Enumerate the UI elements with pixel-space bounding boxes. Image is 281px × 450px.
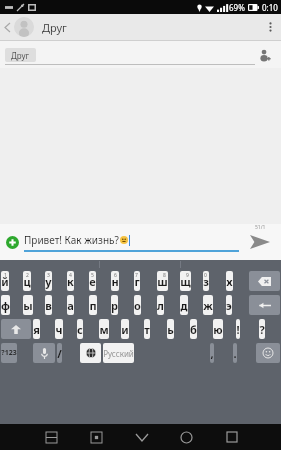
button[interactable]: Back	[0, 14, 14, 40]
staticText: Друг	[11, 50, 30, 61]
button[interactable]: у	[45, 271, 52, 291]
button[interactable]	[33, 343, 55, 363]
button[interactable]: Recents	[209, 424, 254, 450]
button[interactable]: э	[226, 295, 232, 315]
staticText: !	[236, 322, 240, 337]
button[interactable]: м	[99, 319, 109, 339]
staticText: т	[144, 322, 150, 337]
staticText: ш	[157, 274, 168, 289]
staticText: 51/1	[255, 224, 266, 231]
staticText: ж	[203, 298, 213, 313]
staticText: ф	[1, 298, 10, 313]
staticText: в	[45, 298, 52, 313]
button[interactable]: .	[233, 343, 237, 363]
staticText: п	[89, 298, 97, 313]
button[interactable]: я	[33, 319, 40, 339]
staticText: ?	[259, 322, 265, 337]
button[interactable]: Add contact	[254, 44, 276, 66]
button[interactable]: д	[180, 295, 188, 315]
button[interactable]: ш	[157, 271, 168, 291]
button[interactable]: и	[121, 319, 129, 339]
button[interactable]: Русский	[103, 343, 134, 363]
button[interactable]: л	[157, 295, 164, 315]
staticText: д	[180, 298, 188, 313]
button[interactable]: т	[144, 319, 150, 339]
staticText: о	[134, 298, 141, 313]
staticText: Привет! Как жизнь?	[24, 233, 119, 247]
staticText: з	[203, 274, 209, 289]
button[interactable]: Screenshot	[74, 424, 119, 450]
button[interactable]: к	[67, 271, 74, 291]
staticText: х	[226, 274, 233, 289]
staticText: ь	[167, 322, 174, 337]
staticText: я	[33, 322, 40, 337]
button[interactable]: й	[1, 271, 9, 291]
button[interactable]: ?	[259, 319, 265, 339]
staticText: ,	[210, 346, 214, 361]
staticText: ю	[213, 322, 223, 337]
button[interactable]: ,	[210, 343, 214, 363]
button[interactable]: щ	[180, 271, 191, 291]
button[interactable]: р	[111, 295, 118, 315]
staticText: ы	[23, 298, 33, 313]
staticText: щ	[180, 274, 191, 289]
button[interactable]: х	[226, 271, 233, 291]
button[interactable]: More options	[259, 14, 281, 40]
staticText: л	[157, 298, 164, 313]
button[interactable]: г	[134, 271, 140, 291]
staticText: й	[1, 274, 9, 289]
staticText: .	[233, 346, 237, 361]
button[interactable]: Home	[164, 424, 209, 450]
staticText: а	[67, 298, 74, 313]
staticText: 7	[135, 272, 138, 279]
staticText: и	[121, 322, 129, 337]
staticText: Друг	[42, 20, 67, 35]
button[interactable]: Split screen	[28, 424, 74, 450]
button[interactable]	[1, 319, 31, 339]
staticText: б	[190, 322, 197, 337]
button[interactable]: ь	[167, 319, 174, 339]
staticText: е	[89, 274, 96, 289]
button[interactable]: ц	[23, 271, 31, 291]
button[interactable]: а	[67, 295, 74, 315]
button[interactable]: ю	[213, 319, 223, 339]
button[interactable]	[249, 295, 280, 315]
button[interactable]: н	[111, 271, 119, 291]
staticText: 5	[91, 272, 94, 279]
button[interactable]: /	[57, 343, 62, 363]
staticText: ?123	[1, 348, 17, 358]
button[interactable]: е	[89, 271, 96, 291]
button[interactable]: б	[190, 319, 197, 339]
staticText: н	[111, 274, 119, 289]
staticText: 6	[114, 272, 117, 279]
button[interactable]: з	[203, 271, 209, 291]
button[interactable]: в	[45, 295, 52, 315]
staticText: 2	[26, 272, 29, 279]
button[interactable]	[249, 271, 280, 291]
button[interactable]	[256, 343, 280, 363]
button[interactable]: !	[236, 319, 240, 339]
staticText: к	[67, 274, 74, 289]
button[interactable]: ?123	[1, 343, 17, 363]
button[interactable]: Attach	[0, 230, 24, 254]
staticText: 8	[163, 272, 166, 279]
button[interactable]: ж	[203, 295, 213, 315]
button[interactable]: о	[134, 295, 141, 315]
button[interactable]: п	[89, 295, 97, 315]
button[interactable]: Hide keyboard	[119, 424, 164, 450]
button[interactable]: с	[77, 319, 83, 339]
button[interactable]: ы	[23, 295, 33, 315]
button[interactable]	[80, 343, 101, 363]
button[interactable]: Send	[239, 224, 281, 260]
button[interactable]: ч	[55, 319, 63, 339]
staticText: /	[57, 346, 62, 361]
staticText: 0:10	[262, 2, 278, 13]
staticText: с	[77, 322, 83, 337]
staticText: Русский	[103, 348, 134, 359]
button[interactable]: Друг	[5, 48, 36, 62]
button[interactable]: ф	[1, 295, 10, 315]
staticText: ч	[55, 322, 63, 337]
